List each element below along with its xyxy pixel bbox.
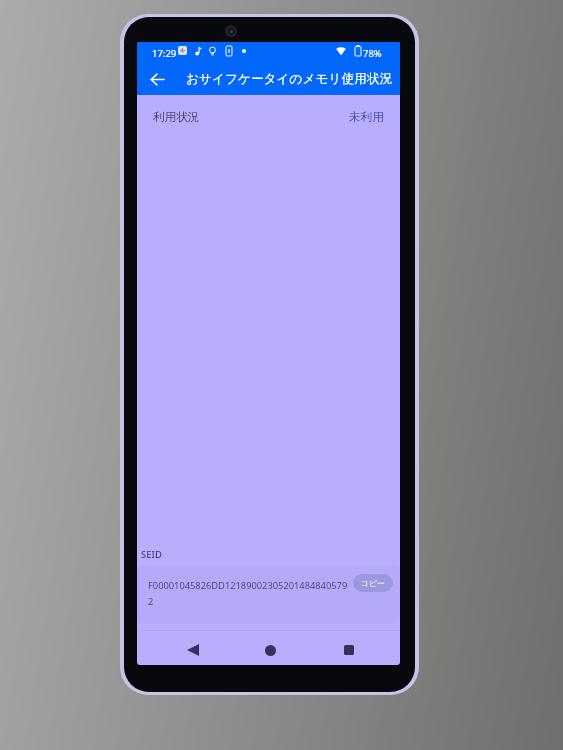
staticText: 利用状況 (153, 110, 200, 125)
staticText: SEID (141, 548, 162, 561)
button[interactable]: Recents (330, 633, 367, 665)
staticText: F00001045826DD121890023052014848405792 (148, 579, 349, 608)
button[interactable]: Home (252, 633, 289, 665)
button[interactable]: 利用状況 (137, 95, 400, 140)
staticText: 78% (363, 47, 382, 60)
button[interactable]: Back (142, 64, 172, 94)
button[interactable]: Back (174, 633, 211, 665)
staticText: 未利用 (349, 110, 384, 125)
staticText: 17:29 (152, 47, 177, 60)
staticText: コピー (361, 578, 385, 588)
button[interactable]: コピー (353, 574, 393, 592)
staticText: おサイフケータイのメモリ使用状況 (186, 71, 393, 87)
